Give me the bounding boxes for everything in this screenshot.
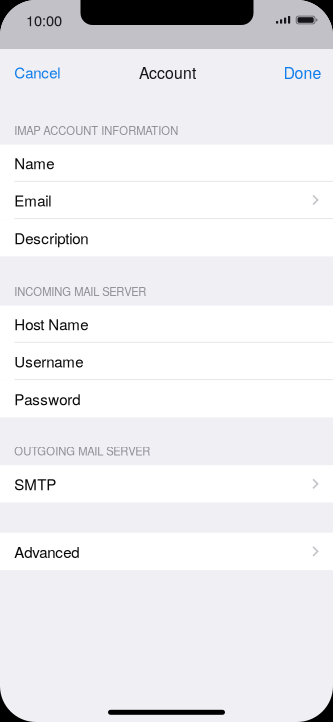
button[interactable]: Username bbox=[0, 343, 333, 380]
staticText: Cancel bbox=[14, 61, 60, 83]
staticText: Done bbox=[283, 61, 321, 83]
staticText: IMAP ACCOUNT INFORMATION bbox=[14, 122, 178, 138]
button[interactable]: Name bbox=[0, 145, 333, 182]
button[interactable]: Host Name bbox=[0, 306, 333, 343]
staticText: SMTP bbox=[14, 473, 56, 495]
staticText: Host Name bbox=[14, 313, 88, 335]
button[interactable]: Password bbox=[0, 380, 333, 417]
button[interactable]: Advanced bbox=[0, 533, 333, 570]
button[interactable]: Description bbox=[0, 219, 333, 256]
staticText: Advanced bbox=[14, 541, 79, 562]
staticText: Account bbox=[139, 61, 196, 83]
button[interactable]: Done bbox=[273, 50, 333, 94]
button[interactable]: Cancel bbox=[0, 50, 70, 94]
button[interactable]: SMTP bbox=[0, 465, 333, 502]
staticText: Username bbox=[14, 350, 83, 372]
staticText: Description bbox=[14, 227, 88, 248]
staticText: INCOMING MAIL SERVER bbox=[14, 283, 146, 299]
staticText: 10:00 bbox=[26, 9, 62, 30]
staticText: Name bbox=[14, 152, 54, 173]
staticText: OUTGOING MAIL SERVER bbox=[14, 443, 150, 459]
staticText: Email bbox=[14, 189, 51, 211]
button[interactable]: Email bbox=[0, 182, 333, 219]
staticText: Password bbox=[14, 388, 80, 410]
